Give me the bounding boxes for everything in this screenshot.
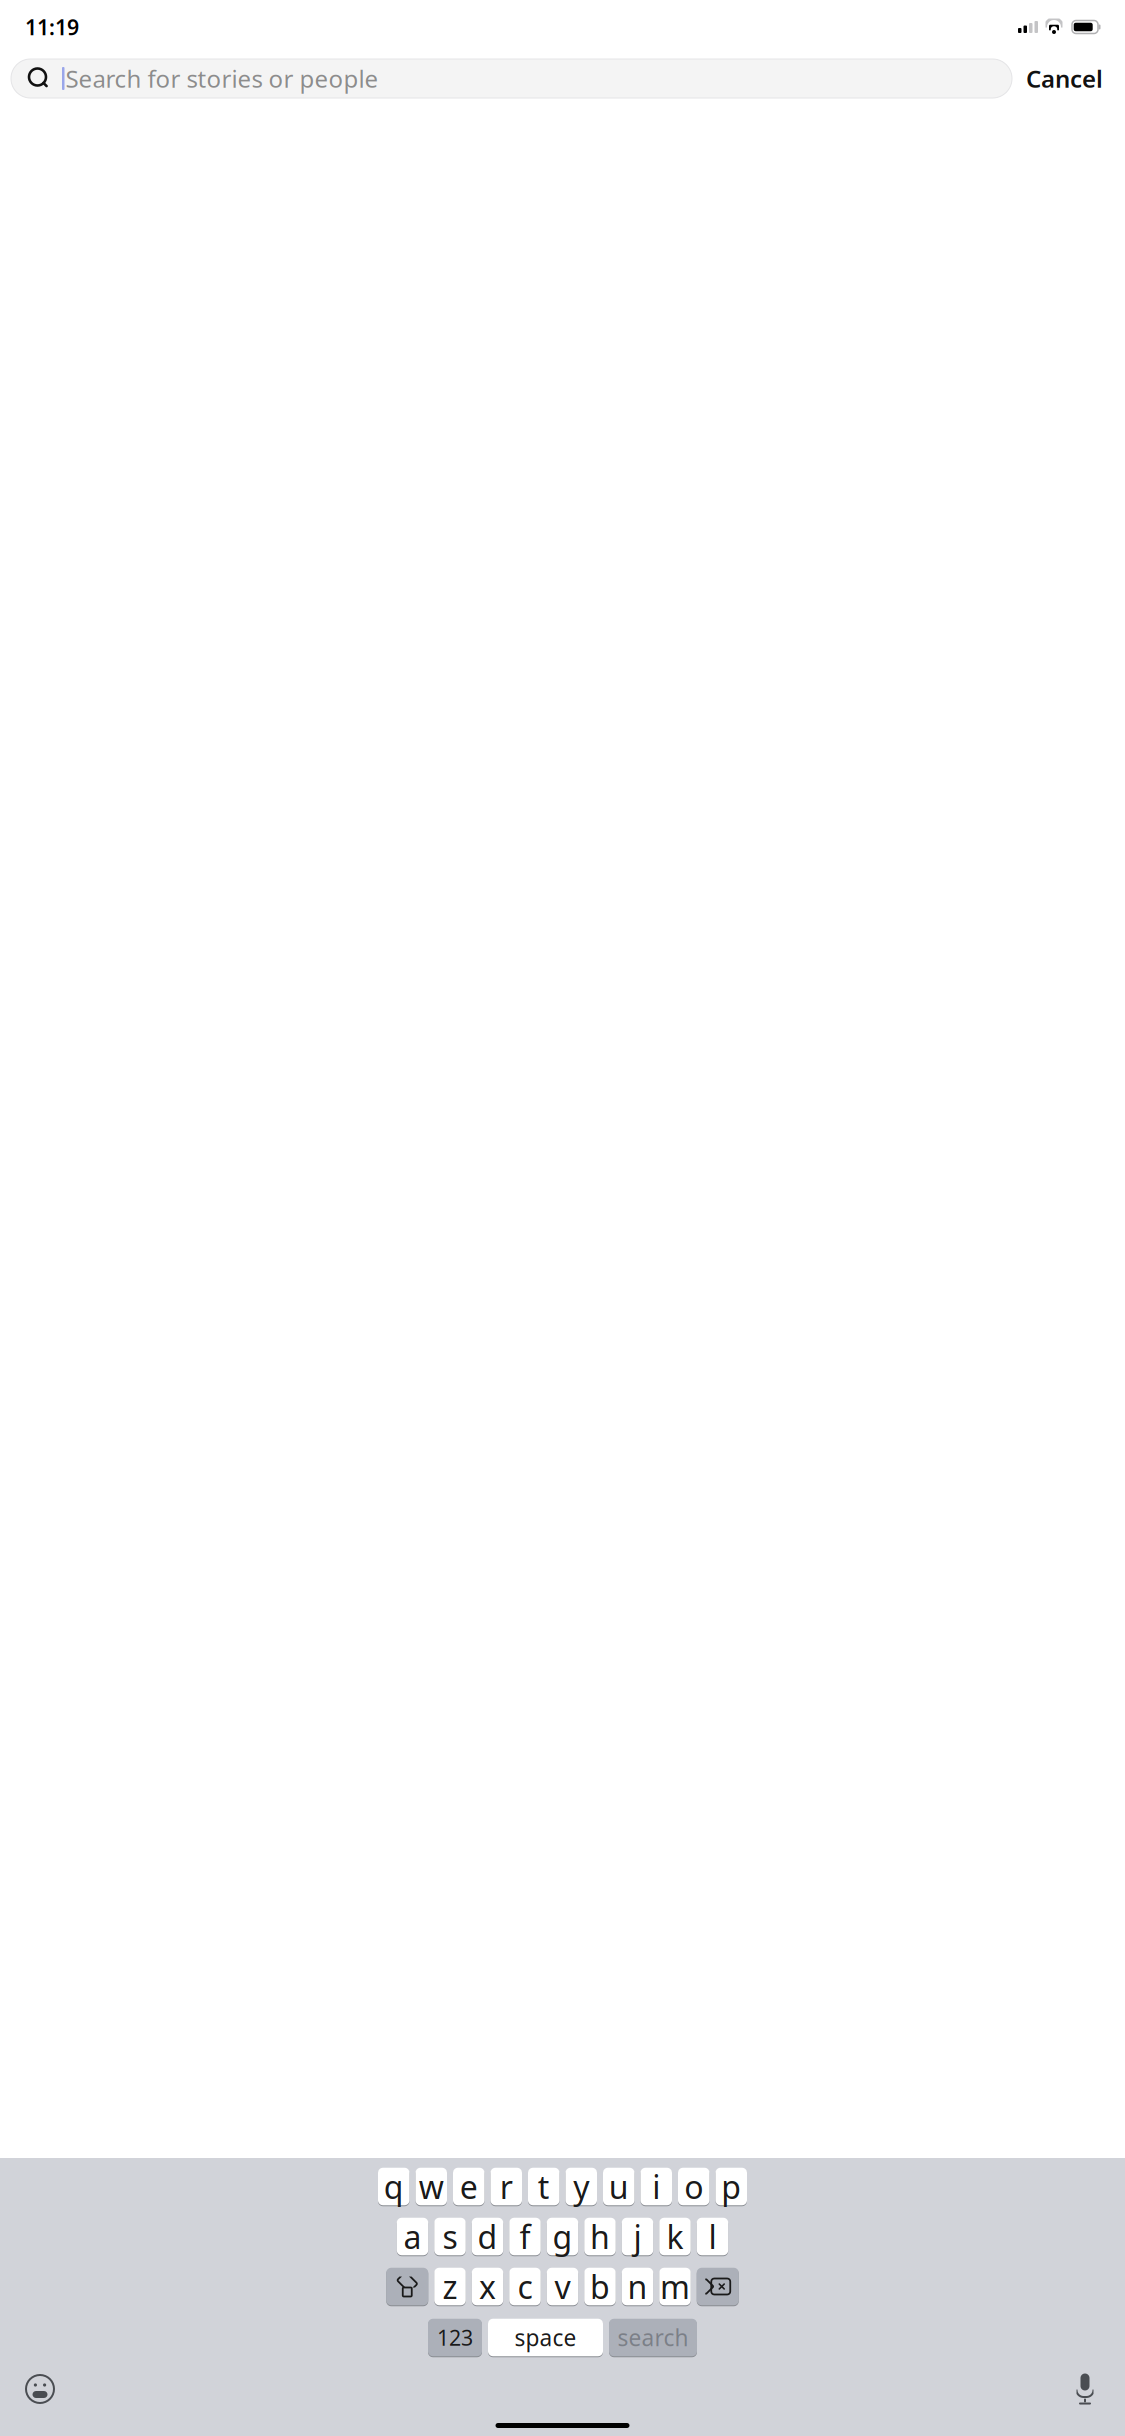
staticText: h bbox=[590, 2215, 610, 2258]
button[interactable]: q bbox=[378, 2167, 409, 2206]
button[interactable]: Emoji bbox=[13, 2369, 67, 2409]
button[interactable]: Cancel bbox=[1012, 59, 1117, 98]
staticText: d bbox=[477, 2215, 497, 2258]
button[interactable]: t bbox=[528, 2167, 559, 2206]
button[interactable]: v bbox=[547, 2267, 578, 2306]
staticText: b bbox=[590, 2265, 610, 2308]
staticText: g bbox=[552, 2215, 572, 2258]
button[interactable]: n bbox=[622, 2267, 653, 2306]
button[interactable]: o bbox=[678, 2167, 709, 2206]
button[interactable]: y bbox=[565, 2167, 597, 2206]
staticText: w bbox=[419, 2165, 444, 2208]
button[interactable]: z bbox=[434, 2267, 466, 2306]
staticText: y bbox=[573, 2165, 589, 2208]
button[interactable]: p bbox=[715, 2167, 747, 2206]
button[interactable]: k bbox=[659, 2217, 691, 2256]
button[interactable]: m bbox=[659, 2267, 691, 2306]
button[interactable]: d bbox=[472, 2217, 503, 2256]
button[interactable]: b bbox=[584, 2267, 616, 2306]
button[interactable]: e bbox=[453, 2167, 484, 2206]
button[interactable]: c bbox=[509, 2267, 541, 2306]
button[interactable]: j bbox=[622, 2217, 653, 2256]
button[interactable]: Search for stories or people bbox=[11, 59, 1012, 98]
button[interactable]: w bbox=[415, 2167, 447, 2206]
staticText: n bbox=[627, 2265, 647, 2308]
staticText: r bbox=[500, 2165, 513, 2208]
staticText: c bbox=[517, 2265, 532, 2308]
staticText: p bbox=[721, 2165, 741, 2208]
button[interactable]: h bbox=[584, 2217, 616, 2256]
staticText: 11:19 bbox=[25, 13, 79, 41]
staticText: v bbox=[554, 2265, 570, 2308]
button[interactable]: u bbox=[603, 2167, 634, 2206]
staticText: l bbox=[708, 2215, 716, 2258]
staticText: Search for stories or people bbox=[65, 63, 378, 94]
button[interactable]: a bbox=[397, 2217, 428, 2256]
staticText: k bbox=[666, 2215, 683, 2258]
staticText: s bbox=[442, 2215, 457, 2258]
staticText: search bbox=[617, 2322, 688, 2352]
staticText: e bbox=[460, 2165, 478, 2208]
staticText: a bbox=[403, 2215, 421, 2258]
button[interactable]: l bbox=[697, 2217, 728, 2256]
staticText: z bbox=[442, 2265, 457, 2308]
staticText: f bbox=[519, 2215, 530, 2258]
staticText: Cancel bbox=[1026, 63, 1103, 94]
staticText: u bbox=[609, 2165, 629, 2208]
button[interactable]: Shift bbox=[386, 2267, 428, 2306]
button[interactable]: x bbox=[472, 2267, 503, 2306]
button[interactable]: g bbox=[547, 2217, 578, 2256]
button[interactable]: s bbox=[434, 2217, 466, 2256]
button[interactable]: 123 bbox=[428, 2318, 482, 2357]
button[interactable]: search bbox=[609, 2318, 697, 2357]
button[interactable]: i bbox=[640, 2167, 672, 2206]
staticText: o bbox=[684, 2165, 703, 2208]
button[interactable]: space bbox=[488, 2318, 603, 2357]
button[interactable]: f bbox=[509, 2217, 541, 2256]
button[interactable]: Delete bbox=[697, 2267, 739, 2306]
staticText: 123 bbox=[437, 2323, 473, 2352]
staticText: m bbox=[660, 2265, 690, 2308]
button[interactable]: r bbox=[490, 2167, 522, 2206]
staticText: q bbox=[384, 2165, 404, 2208]
staticText: i bbox=[652, 2165, 660, 2208]
staticText: t bbox=[538, 2165, 550, 2208]
button[interactable]: Dictation bbox=[1058, 2369, 1112, 2409]
staticText: j bbox=[633, 2215, 641, 2258]
staticText: space bbox=[514, 2322, 576, 2352]
staticText: x bbox=[479, 2265, 496, 2308]
